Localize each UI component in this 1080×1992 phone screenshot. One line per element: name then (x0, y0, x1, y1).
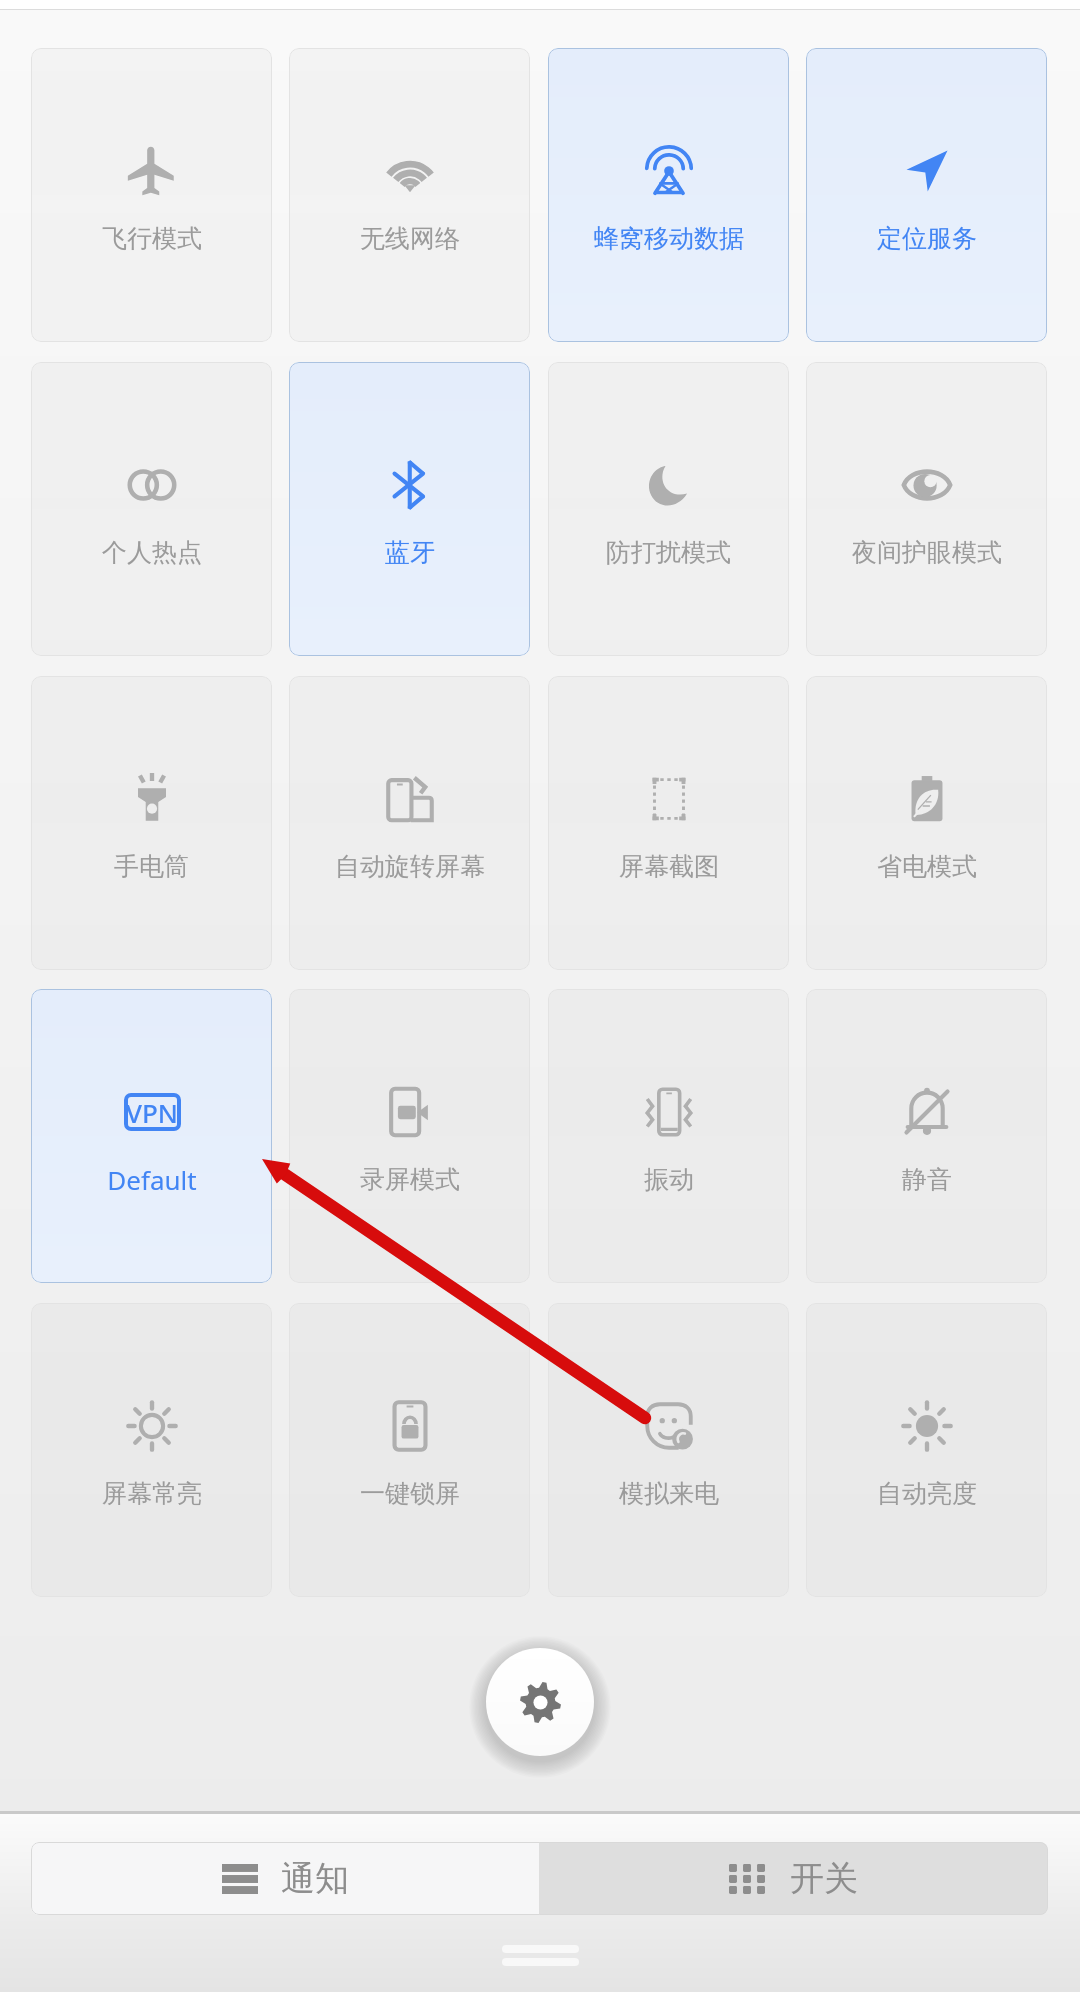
staticText: Default (107, 1162, 197, 1197)
button[interactable]: 通知 (31, 1842, 539, 1915)
staticText: 防打扰模式 (606, 537, 731, 568)
staticText: 通知 (281, 1857, 349, 1900)
staticText: 模拟来电 (619, 1478, 719, 1509)
button[interactable]: 开关 (539, 1842, 1048, 1915)
staticText: 开关 (790, 1857, 858, 1900)
button[interactable]: 振动 (548, 989, 789, 1283)
button[interactable]: 无线网络 (289, 48, 530, 342)
button[interactable]: 自动亮度 (806, 1303, 1047, 1597)
staticText: 无线网络 (360, 223, 460, 254)
button[interactable]: 录屏模式 (289, 989, 530, 1283)
button[interactable]: 防打扰模式 (548, 362, 789, 656)
button[interactable]: VPN (31, 989, 272, 1283)
button[interactable]: 夜间护眼模式 (806, 362, 1047, 656)
button[interactable]: 自动旋转屏幕 (289, 676, 530, 970)
button[interactable]: 蓝牙 (289, 362, 530, 656)
button[interactable]: Settings (486, 1648, 594, 1756)
staticText: VPN (126, 1095, 179, 1130)
staticText: 一键锁屏 (360, 1478, 460, 1509)
staticText: 定位服务 (877, 223, 977, 254)
button[interactable]: 屏幕常亮 (31, 1303, 272, 1597)
button[interactable]: 模拟来电 (548, 1303, 789, 1597)
staticText: 静音 (902, 1164, 952, 1195)
staticText: 飞行模式 (102, 223, 202, 254)
button[interactable]: 屏幕截图 (548, 676, 789, 970)
staticText: 振动 (644, 1164, 694, 1195)
button[interactable]: 静音 (806, 989, 1047, 1283)
staticText: 屏幕截图 (619, 851, 719, 882)
staticText: 手电筒 (114, 851, 189, 882)
button[interactable]: 手电筒 (31, 676, 272, 970)
button[interactable]: 一键锁屏 (289, 1303, 530, 1597)
button[interactable]: 个人热点 (31, 362, 272, 656)
button[interactable]: 蜂窝移动数据 (548, 48, 789, 342)
button[interactable]: 定位服务 (806, 48, 1047, 342)
staticText: 录屏模式 (360, 1164, 460, 1195)
staticText: 省电模式 (877, 851, 977, 882)
staticText: 夜间护眼模式 (852, 537, 1002, 568)
staticText: 自动旋转屏幕 (335, 851, 485, 882)
staticText: 蓝牙 (385, 537, 435, 568)
staticText: 个人热点 (102, 537, 202, 568)
staticText: 自动亮度 (877, 1478, 977, 1509)
button[interactable]: 省电模式 (806, 676, 1047, 970)
button[interactable]: 飞行模式 (31, 48, 272, 342)
staticText: 屏幕常亮 (102, 1478, 202, 1509)
staticText: 蜂窝移动数据 (594, 223, 744, 254)
